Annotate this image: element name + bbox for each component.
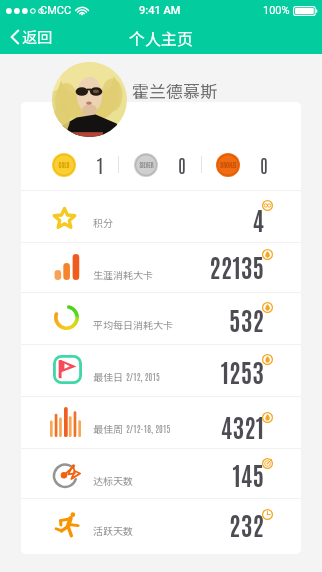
staticText: 达标天数 (93, 473, 133, 487)
button[interactable]: 积分 (21, 190, 301, 242)
staticText: 最佳周 (93, 421, 123, 435)
staticText: GOLD (58, 161, 70, 169)
button[interactable]: 返回 (6, 21, 57, 53)
staticText: 霍兰德慕斯 (132, 78, 217, 103)
button[interactable]: 活跃天数 (21, 498, 301, 554)
staticText: 532 (229, 303, 264, 335)
staticText: 0 (178, 152, 186, 177)
staticText: 1 (96, 152, 104, 177)
staticText: 最佳日 (93, 369, 123, 383)
staticText: 232 (229, 508, 264, 540)
staticText: 1253 (220, 355, 264, 387)
staticText: SILVER (139, 161, 154, 169)
staticText: 22135 (209, 250, 264, 282)
button[interactable]: 最佳周 (21, 396, 301, 448)
staticText: 个人主页 (129, 26, 194, 49)
staticText: 2/12-18, 2015 (126, 423, 171, 435)
button[interactable]: SILVER (134, 153, 158, 177)
button[interactable]: 平均每日消耗大卡 (21, 292, 301, 344)
staticText: 积分 (93, 215, 113, 229)
staticText: 145 (232, 458, 264, 490)
staticText: 活跃天数 (93, 523, 133, 537)
staticText: 2/12, 2015 (126, 371, 160, 383)
staticText: 平均每日消耗大卡 (93, 317, 173, 331)
staticText: 0 (260, 152, 268, 177)
staticText: 生涯消耗大卡 (93, 267, 153, 281)
staticText: 100% (263, 4, 290, 17)
button[interactable]: BRONZE (216, 153, 240, 177)
button[interactable]: GOLD (52, 153, 76, 177)
button[interactable]: 生涯消耗大卡 (21, 242, 301, 291)
staticText: CMCC (40, 4, 72, 17)
staticText: 4 (252, 203, 264, 235)
staticText: BRONZE (220, 161, 237, 169)
staticText: 返回 (22, 26, 53, 48)
staticText: 9:41 AM (139, 4, 181, 17)
staticText: 4321 (220, 410, 264, 442)
button[interactable]: 达标天数 (21, 448, 301, 498)
button[interactable]: 最佳日 (21, 344, 301, 396)
